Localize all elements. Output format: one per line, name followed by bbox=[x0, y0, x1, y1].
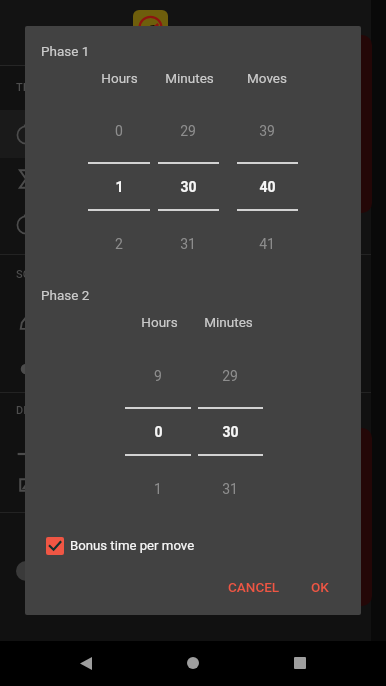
staticText: SOUND bbox=[16, 268, 53, 281]
staticText: CANCEL bbox=[228, 579, 280, 595]
button[interactable]: Setting bbox=[0, 342, 386, 392]
staticText: 41 bbox=[259, 236, 275, 252]
staticText: Hours bbox=[141, 314, 178, 330]
button[interactable]: Setting bbox=[0, 513, 386, 561]
button[interactable]: Back bbox=[70, 647, 102, 679]
staticText: 0 bbox=[154, 424, 163, 440]
staticText: 29 bbox=[222, 368, 238, 384]
staticText: Phase 1 bbox=[41, 43, 90, 59]
button[interactable]: Value 30 bbox=[143, 111, 233, 261]
button[interactable]: Setting bbox=[0, 470, 386, 512]
staticText: 0 bbox=[115, 123, 123, 139]
staticText: OK bbox=[311, 579, 329, 595]
staticText: 30 bbox=[180, 179, 197, 195]
button[interactable]: Recent apps bbox=[284, 647, 316, 679]
staticText: 1 bbox=[115, 179, 124, 195]
button[interactable]: Setting bbox=[0, 158, 386, 206]
button[interactable]: Setting bbox=[0, 110, 386, 158]
button[interactable]: Value 40 bbox=[222, 111, 312, 261]
button[interactable]: CANCEL bbox=[218, 569, 290, 605]
staticText: 39 bbox=[259, 123, 275, 139]
button[interactable]: Setting bbox=[0, 428, 386, 470]
button[interactable]: Value 30 bbox=[185, 356, 275, 506]
staticText: 2 bbox=[115, 236, 123, 252]
button[interactable]: OK bbox=[301, 569, 339, 605]
staticText: 1 bbox=[154, 481, 162, 497]
button[interactable]: Value 1 bbox=[74, 111, 164, 261]
staticText: Minutes bbox=[204, 314, 253, 330]
staticText: Moves bbox=[247, 70, 287, 86]
button[interactable]: Value 0 bbox=[113, 356, 203, 506]
staticText: Bonus time per move bbox=[70, 538, 195, 553]
button[interactable]: Setting bbox=[0, 206, 386, 254]
staticText: 31 bbox=[180, 236, 196, 252]
staticText: 9 bbox=[154, 368, 162, 384]
staticText: TIME bbox=[16, 81, 42, 94]
button[interactable]: Home bbox=[177, 647, 209, 679]
staticText: 29 bbox=[180, 123, 196, 139]
staticText: 31 bbox=[222, 481, 238, 497]
staticText: 40 bbox=[259, 179, 276, 195]
staticText: Minutes bbox=[165, 70, 214, 86]
staticText: 30 bbox=[222, 424, 239, 440]
button[interactable]: Setting bbox=[0, 292, 386, 342]
staticText: Phase 2 bbox=[41, 287, 90, 303]
staticText: Hours bbox=[101, 70, 138, 86]
staticText: DISPLAY bbox=[16, 404, 60, 417]
button[interactable]: Bonus time per move bbox=[40, 530, 206, 562]
